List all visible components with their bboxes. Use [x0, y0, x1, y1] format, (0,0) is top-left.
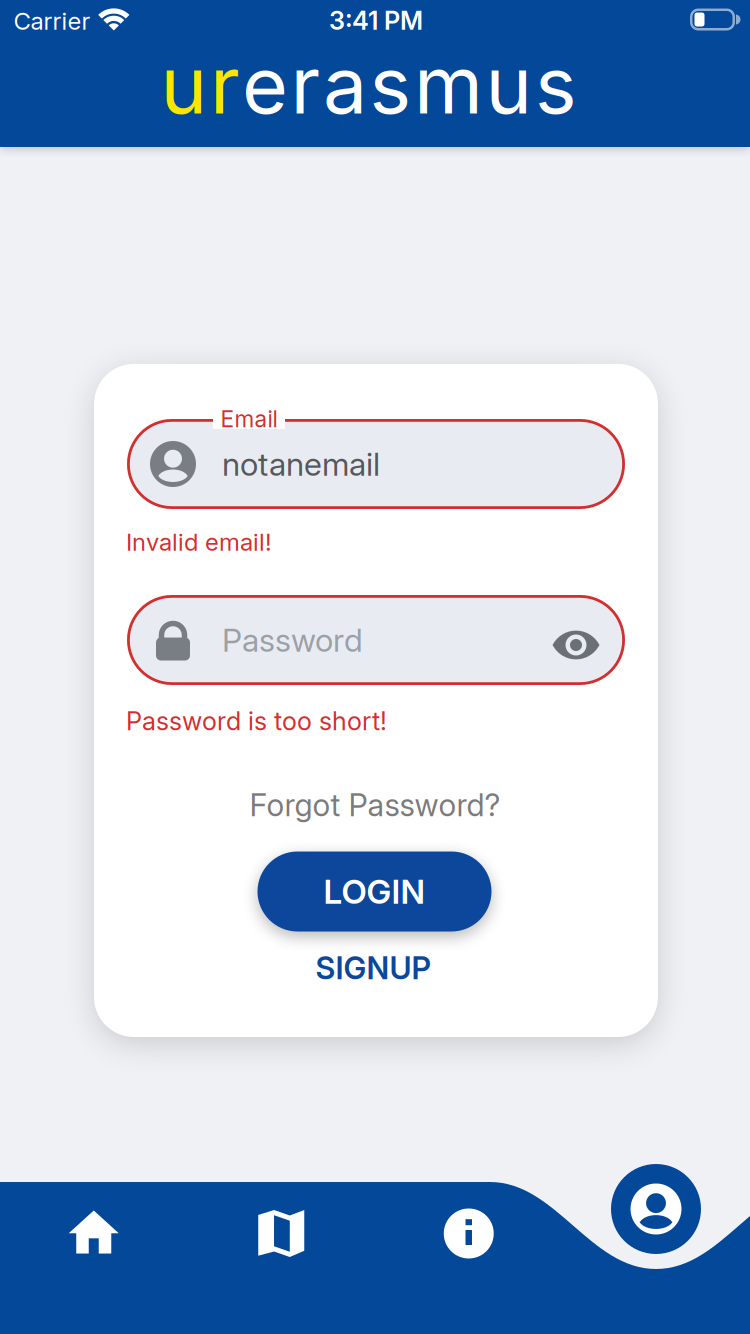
staticText: erasmus: [242, 39, 577, 131]
button[interactable]: [444, 1208, 494, 1258]
staticText: Carrier: [13, 7, 90, 35]
button[interactable]: [611, 1164, 701, 1254]
button[interactable]: notanemail: [127, 419, 625, 509]
staticText: notanemail: [222, 445, 380, 483]
staticText: Password is too short!: [126, 706, 387, 736]
staticText: LOGIN: [323, 872, 425, 911]
staticText: Forgot Password?: [249, 787, 500, 823]
staticText: ur: [160, 39, 240, 131]
staticText: Password: [222, 621, 363, 659]
button[interactable]: Forgot Password?: [249, 787, 500, 823]
staticText: Invalid email!: [126, 528, 272, 556]
button[interactable]: SIGNUP: [315, 950, 430, 986]
button[interactable]: [69, 1210, 119, 1253]
staticText: SIGNUP: [315, 950, 430, 986]
staticText: 3:41 PM: [329, 6, 423, 35]
button[interactable]: [258, 1210, 304, 1257]
button[interactable]: Password: [127, 595, 625, 685]
button[interactable]: LOGIN: [257, 851, 491, 931]
staticText: Email: [220, 406, 277, 432]
